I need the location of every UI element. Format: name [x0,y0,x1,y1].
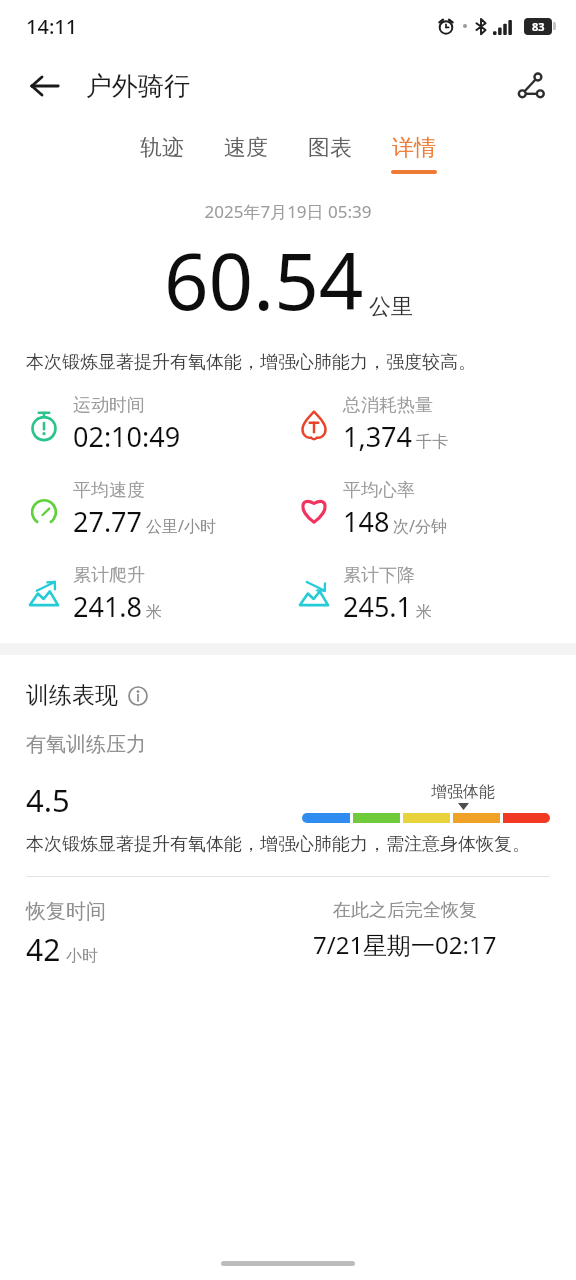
staticText: 60.54 [164,227,364,333]
staticText: 图表 [308,134,352,162]
staticText: 27.77 [73,503,143,540]
button[interactable]: 详情 [391,134,437,174]
staticText: 241.8 [73,588,143,625]
staticText: 平均心率 [343,479,415,502]
staticText: 次/分钟 [393,515,447,537]
staticText: 详情 [392,134,436,162]
staticText: 有氧训练压力 [26,732,146,757]
button[interactable]: Back [22,63,68,109]
button[interactable]: 累计爬升 [26,564,296,625]
button[interactable]: 平均速度 [26,479,296,540]
staticText: 小时 [66,946,98,966]
button[interactable]: 平均心率 [296,479,566,540]
staticText: 公里 [369,293,413,321]
staticText: 83 [532,19,545,34]
staticText: 千卡 [416,432,448,452]
staticText: 在此之后完全恢复 [333,899,477,922]
staticText: 米 [146,602,162,622]
staticText: 速度 [224,134,268,162]
staticText: 本次锻炼显著提升有氧体能，增强心肺能力，需注意身体恢复。 [26,833,530,856]
staticText: 02:10:49 [73,418,181,455]
staticText: 公里/小时 [146,515,216,537]
staticText: 运动时间 [73,394,145,417]
staticText: 累计下降 [343,564,415,587]
button[interactable]: Share [508,63,554,109]
button[interactable]: 图表 [307,134,353,174]
staticText: 训练表现 [26,681,118,710]
staticText: 户外骑行 [86,70,190,103]
staticText: 2025年7月19日 05:39 [0,200,576,223]
staticText: 累计爬升 [73,564,145,587]
button[interactable]: 训练表现 [26,681,148,710]
staticText: 4.5 [26,779,70,821]
button[interactable]: 总消耗热量 [296,394,566,455]
button[interactable]: 速度 [223,134,269,174]
staticText: 轨迹 [140,134,184,162]
staticText: 增强体能 [431,782,495,802]
staticText: 总消耗热量 [343,394,433,417]
staticText: 148 [343,503,390,540]
staticText: 恢复时间 [26,899,106,924]
staticText: 米 [416,602,432,622]
staticText: 1,374 [343,418,413,455]
staticText: 7/21星期一02:17 [313,928,497,961]
staticText: 245.1 [343,588,413,625]
staticText: 本次锻炼显著提升有氧体能，增强心肺能力，强度较高。 [26,351,550,374]
button[interactable]: 运动时间 [26,394,296,455]
button[interactable]: 轨迹 [139,134,185,174]
staticText: 14:11 [26,13,78,40]
staticText: 平均速度 [73,479,145,502]
button[interactable]: 累计下降 [296,564,566,625]
staticText: 42 [26,929,61,970]
